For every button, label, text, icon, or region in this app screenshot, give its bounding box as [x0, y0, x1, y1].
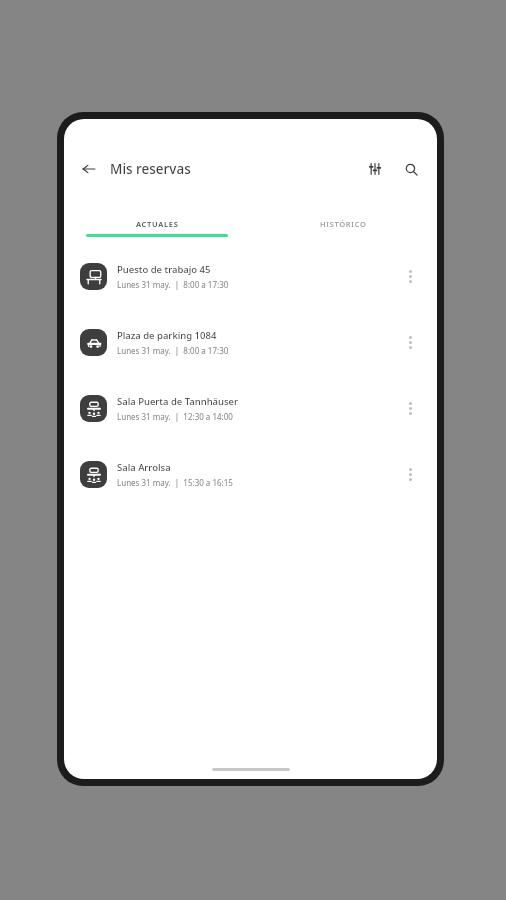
staticText: HISTÓRICO: [320, 219, 367, 229]
staticText: Sala Arrolsa: [117, 461, 171, 474]
staticText: Lunes 31 may. | 8:00 a 17:30: [117, 279, 229, 290]
button[interactable]: HISTÓRICO: [250, 217, 437, 237]
button[interactable]: Filter: [361, 155, 389, 183]
button[interactable]: More options: [399, 261, 421, 291]
button[interactable]: ACTUALES: [64, 217, 250, 237]
staticText: ACTUALES: [136, 219, 179, 229]
button[interactable]: More options: [399, 459, 421, 489]
button[interactable]: More options: [399, 393, 421, 423]
staticText: Puesto de trabajo 45: [117, 263, 211, 276]
staticText: Lunes 31 may. | 8:00 a 17:30: [117, 345, 229, 356]
button[interactable]: Plaza de parking 1084: [64, 323, 437, 361]
button[interactable]: Sala Puerta de Tannhäuser: [64, 389, 437, 427]
staticText: Plaza de parking 1084: [117, 329, 217, 342]
button[interactable]: Search: [397, 155, 425, 183]
button[interactable]: Sala Arrolsa: [64, 455, 437, 493]
button[interactable]: Back: [74, 154, 104, 184]
staticText: Sala Puerta de Tannhäuser: [117, 395, 239, 408]
staticText: Lunes 31 may. | 15:30 a 16:15: [117, 477, 233, 488]
button[interactable]: Puesto de trabajo 45: [64, 257, 437, 295]
staticText: Lunes 31 may. | 12:30 a 14:00: [117, 411, 233, 422]
button[interactable]: More options: [399, 327, 421, 357]
staticText: Mis reservas: [110, 160, 191, 178]
